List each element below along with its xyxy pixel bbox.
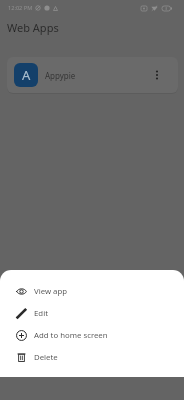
staticText: 12:02 PM [8, 4, 33, 12]
button[interactable]: Edit [0, 302, 184, 324]
button[interactable]: View app [0, 280, 184, 302]
button[interactable]: More options [146, 57, 168, 93]
staticText: Add to home screen [34, 330, 108, 341]
button[interactable]: Add to home screen [0, 324, 184, 346]
staticText: Web Apps [7, 20, 59, 35]
staticText: Delete [34, 352, 58, 363]
staticText: View app [34, 286, 68, 297]
staticText: Appypie [45, 70, 76, 81]
staticText: Edit [34, 308, 48, 319]
button[interactable]: Delete [0, 346, 184, 368]
staticText: A [22, 66, 31, 84]
button[interactable]: A [7, 57, 178, 93]
